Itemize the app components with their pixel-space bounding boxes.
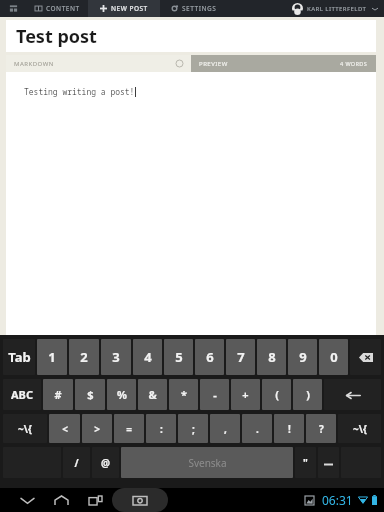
button[interactable]: ": [295, 447, 316, 478]
button[interactable]: :: [146, 414, 176, 443]
button[interactable]: Minimize: [318, 447, 339, 478]
staticText: ,: [224, 422, 227, 436]
staticText: .: [256, 422, 259, 436]
staticText: 06:31: [322, 492, 353, 508]
button[interactable]: Screenshot: [112, 488, 168, 512]
staticText: 9: [299, 348, 307, 366]
staticText: >: [94, 422, 100, 436]
staticText: 3: [112, 348, 120, 366]
button[interactable]: Menu: [0, 0, 26, 17]
button[interactable]: ~\{: [338, 414, 381, 443]
button[interactable]: @: [92, 447, 119, 478]
staticText: 6: [206, 348, 214, 366]
button[interactable]: SETTINGS: [160, 0, 228, 17]
staticText: ): [306, 387, 310, 402]
staticText: Tab: [8, 348, 31, 366]
staticText: =: [126, 422, 132, 436]
button[interactable]: >: [82, 414, 112, 443]
button[interactable]: ;: [178, 414, 208, 443]
button[interactable]: 1: [37, 339, 67, 375]
button[interactable]: <: [49, 414, 80, 443]
staticText: @: [101, 456, 110, 470]
staticText: MARKDOWN: [14, 60, 54, 68]
staticText: -: [213, 387, 217, 402]
staticText: Test post: [16, 24, 97, 49]
staticText: ~\{: [18, 422, 32, 436]
staticText: PREVIEW: [199, 60, 228, 68]
staticText: 4 WORDS: [340, 60, 368, 67]
button[interactable]: %: [107, 379, 136, 410]
button[interactable]: +: [231, 379, 260, 410]
staticText: 1: [48, 348, 56, 366]
staticText: ?: [319, 422, 324, 436]
button[interactable]: ): [293, 379, 322, 410]
button[interactable]: 8: [257, 339, 286, 375]
staticText: NEW POST: [111, 4, 148, 13]
button[interactable]: &: [138, 379, 167, 410]
button[interactable]: 5: [164, 339, 193, 375]
button[interactable]: 2: [69, 339, 99, 375]
staticText: ": [303, 456, 308, 470]
staticText: 8: [268, 348, 276, 366]
staticText: 2: [80, 348, 88, 366]
button[interactable]: .: [242, 414, 272, 443]
staticText: $: [87, 387, 94, 402]
button[interactable]: Enter: [324, 379, 381, 410]
staticText: 4: [144, 348, 152, 366]
button[interactable]: 6: [195, 339, 224, 375]
staticText: :: [160, 422, 163, 436]
button[interactable]: Test post: [6, 20, 376, 52]
staticText: <: [62, 422, 68, 436]
button[interactable]: PREVIEW: [191, 55, 376, 72]
staticText: /: [74, 456, 79, 470]
button[interactable]: *: [169, 379, 198, 410]
button[interactable]: 3: [101, 339, 131, 375]
staticText: 0: [330, 348, 338, 366]
staticText: Svenska: [188, 456, 227, 470]
staticText: Testing writing a post!: [24, 86, 135, 97]
staticText: CONTENT: [46, 4, 80, 13]
staticText: &: [148, 387, 157, 402]
button[interactable]: 0: [319, 339, 348, 375]
staticText: KARL LITTERFELDT: [307, 5, 367, 13]
button[interactable]: -: [200, 379, 229, 410]
staticText: +: [242, 387, 249, 402]
button[interactable]: CONTENT: [26, 0, 88, 17]
staticText: ~\{: [353, 422, 367, 436]
button[interactable]: $: [75, 379, 105, 410]
staticText: 5: [175, 348, 183, 366]
button[interactable]: Home: [44, 488, 78, 512]
button[interactable]: ABC: [3, 379, 41, 410]
button[interactable]: #: [43, 379, 73, 410]
button[interactable]: 4: [133, 339, 162, 375]
button[interactable]: ,: [210, 414, 240, 443]
button[interactable]: Svenska: [121, 447, 293, 478]
staticText: %: [117, 387, 127, 402]
staticText: !: [288, 422, 291, 436]
button[interactable]: Back: [10, 488, 44, 512]
button[interactable]: ?: [306, 414, 336, 443]
button[interactable]: Tab: [3, 339, 35, 375]
button[interactable]: =: [114, 414, 144, 443]
button[interactable]: Delete: [350, 339, 381, 375]
button[interactable]: KARL LITTERFELDT: [286, 0, 384, 17]
staticText: SETTINGS: [182, 4, 217, 13]
staticText: ABC: [11, 387, 33, 402]
button[interactable]: MARKDOWN: [6, 55, 191, 72]
button[interactable]: 9: [288, 339, 317, 375]
button[interactable]: ~\{: [3, 414, 47, 443]
button[interactable]: (: [262, 379, 291, 410]
staticText: *: [181, 387, 187, 402]
staticText: #: [54, 387, 62, 402]
button[interactable]: Testing writing a post!: [6, 72, 376, 335]
button[interactable]: 7: [226, 339, 255, 375]
button[interactable]: Recent apps: [78, 488, 112, 512]
staticText: ;: [192, 422, 195, 436]
staticText: 7: [237, 348, 245, 366]
button[interactable]: !: [274, 414, 304, 443]
button[interactable]: NEW POST: [88, 0, 160, 17]
button[interactable]: /: [63, 447, 90, 478]
staticText: (: [275, 387, 279, 402]
